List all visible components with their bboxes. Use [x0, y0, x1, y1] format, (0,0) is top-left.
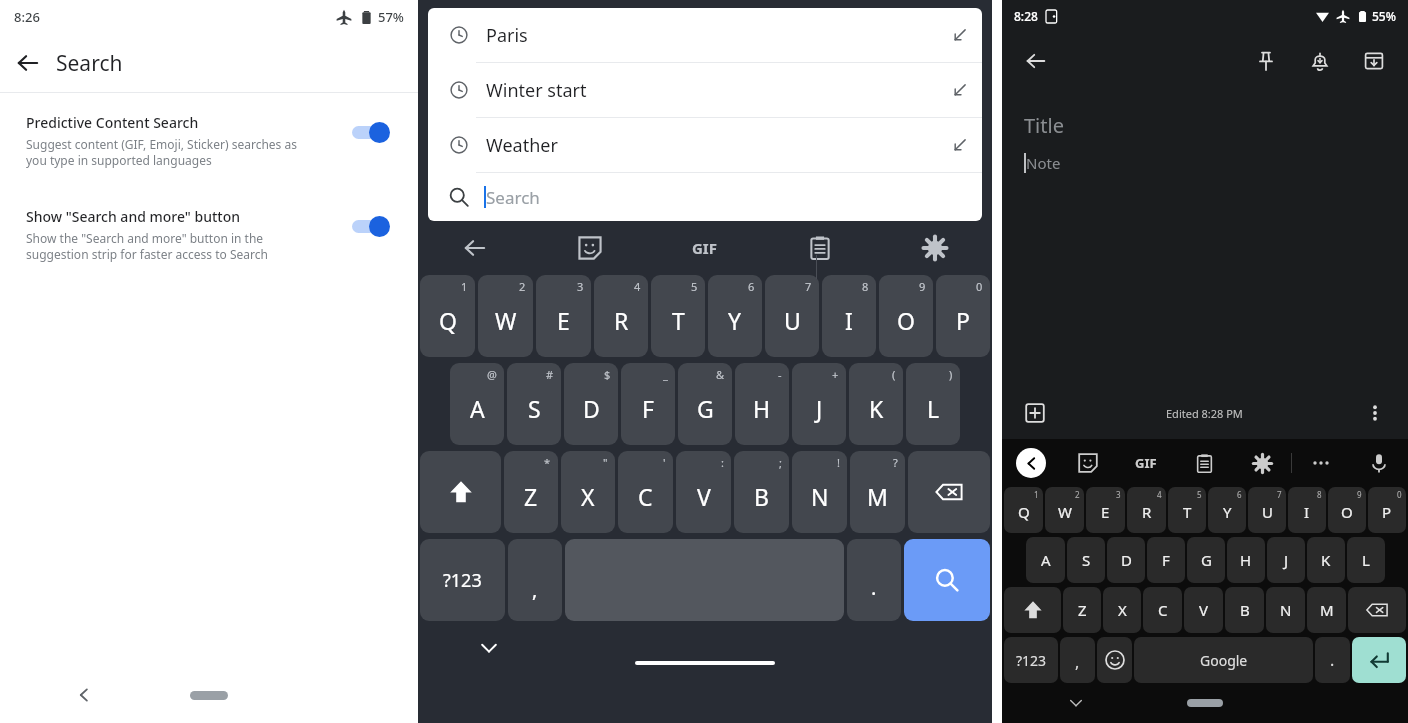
- button[interactable]: 5: [651, 275, 705, 357]
- button[interactable]: Back: [1014, 39, 1058, 83]
- button[interactable]: 5: [1168, 487, 1206, 533]
- button[interactable]: 9: [879, 275, 933, 357]
- button[interactable]: +: [792, 363, 846, 445]
- button[interactable]: G: [1187, 537, 1225, 583]
- button[interactable]: Show "Search and more" button: [0, 205, 418, 265]
- button[interactable]: Paris: [428, 8, 982, 62]
- button[interactable]: Hide keyboard: [1064, 691, 1088, 715]
- button[interactable]: Toggle: [350, 215, 392, 237]
- button[interactable]: S: [1067, 537, 1105, 583]
- button[interactable]: Shift: [420, 451, 501, 533]
- button[interactable]: Shift: [1004, 587, 1061, 633]
- button[interactable]: .: [1315, 637, 1350, 683]
- button[interactable]: Back: [64, 675, 104, 715]
- button[interactable]: M: [1307, 587, 1346, 633]
- button[interactable]: C: [1143, 587, 1182, 633]
- button[interactable]: X: [1103, 587, 1141, 633]
- button[interactable]: ): [906, 363, 960, 445]
- button[interactable]: 1: [420, 275, 475, 357]
- button[interactable]: Predictive Content Search: [0, 111, 418, 171]
- button[interactable]: _: [621, 363, 675, 445]
- button[interactable]: ;: [734, 451, 789, 533]
- button[interactable]: Backspace: [908, 451, 990, 533]
- button[interactable]: Toggle: [350, 121, 392, 143]
- button[interactable]: B: [1225, 587, 1264, 633]
- button[interactable]: 0: [1368, 487, 1406, 533]
- button[interactable]: Back: [418, 221, 532, 275]
- button[interactable]: (: [849, 363, 903, 445]
- button[interactable]: Add: [1018, 396, 1052, 430]
- button[interactable]: 2: [1045, 487, 1084, 533]
- button[interactable]: Stickers: [1059, 439, 1117, 487]
- button[interactable]: 8: [822, 275, 876, 357]
- button[interactable]: Hide keyboard: [474, 633, 504, 663]
- button[interactable]: 7: [1248, 487, 1286, 533]
- button[interactable]: 2: [478, 275, 533, 357]
- button[interactable]: V: [1184, 587, 1223, 633]
- button[interactable]: More: [1292, 439, 1350, 487]
- button[interactable]: Back: [0, 35, 56, 91]
- button[interactable]: L: [1347, 537, 1385, 583]
- button[interactable]: GIF: [647, 221, 762, 275]
- button[interactable]: 1: [1004, 487, 1043, 533]
- button[interactable]: 9: [1328, 487, 1366, 533]
- button[interactable]: N: [1266, 587, 1305, 633]
- button[interactable]: Backspace: [1348, 587, 1406, 633]
- button[interactable]: 7: [765, 275, 819, 357]
- button[interactable]: !: [792, 451, 847, 533]
- button[interactable]: Back: [1016, 448, 1046, 478]
- button[interactable]: Home: [1187, 699, 1223, 707]
- staticText: E: [1101, 502, 1110, 522]
- button[interactable]: ?123: [420, 539, 505, 621]
- button[interactable]: @: [450, 363, 504, 445]
- button[interactable]: J: [1267, 537, 1305, 583]
- button[interactable]: D: [1107, 537, 1145, 583]
- button[interactable]: ,: [508, 539, 562, 621]
- button[interactable]: Emoji: [1097, 637, 1132, 683]
- button[interactable]: Search: [428, 173, 982, 221]
- button[interactable]: ?: [850, 451, 905, 533]
- button[interactable]: .: [847, 539, 901, 621]
- button[interactable]: $: [564, 363, 618, 445]
- button[interactable]: A: [1026, 537, 1065, 583]
- button[interactable]: 3: [536, 275, 591, 357]
- button[interactable]: 0: [936, 275, 990, 357]
- button[interactable]: Enter: [1352, 637, 1406, 683]
- button[interactable]: Google: [1134, 637, 1313, 683]
- button[interactable]: GIF: [1117, 439, 1175, 487]
- button[interactable]: Reminder: [1298, 39, 1342, 83]
- button[interactable]: ': [618, 451, 673, 533]
- button[interactable]: -: [735, 363, 789, 445]
- button[interactable]: #: [507, 363, 561, 445]
- button[interactable]: &: [678, 363, 732, 445]
- button[interactable]: F: [1147, 537, 1185, 583]
- button[interactable]: Search: [904, 539, 990, 621]
- button[interactable]: Settings: [1233, 439, 1291, 487]
- button[interactable]: 4: [1127, 487, 1166, 533]
- button[interactable]: ": [561, 451, 615, 533]
- button[interactable]: Clipboard: [1175, 439, 1233, 487]
- button[interactable]: More options: [1358, 396, 1392, 430]
- button[interactable]: *: [504, 451, 558, 533]
- button[interactable]: Settings: [877, 221, 992, 275]
- button[interactable]: Voice input: [1350, 439, 1408, 487]
- button[interactable]: K: [1307, 537, 1345, 583]
- button[interactable]: Stickers: [532, 221, 647, 275]
- button[interactable]: 4: [594, 275, 648, 357]
- button[interactable]: Pin: [1244, 39, 1288, 83]
- button[interactable]: 6: [708, 275, 762, 357]
- button[interactable]: Z: [1063, 587, 1101, 633]
- button[interactable]: Clipboard: [762, 221, 877, 275]
- button[interactable]: :: [676, 451, 731, 533]
- button[interactable]: Weather: [428, 118, 982, 172]
- button[interactable]: ,: [1060, 637, 1095, 683]
- button[interactable]: H: [1227, 537, 1265, 583]
- button[interactable]: Archive: [1352, 39, 1396, 83]
- button[interactable]: ?123: [1004, 637, 1058, 683]
- button[interactable]: 8: [1288, 487, 1326, 533]
- button[interactable]: Winter start: [428, 63, 982, 117]
- button[interactable]: 3: [1086, 487, 1125, 533]
- button[interactable]: 6: [1208, 487, 1246, 533]
- button[interactable]: Home: [190, 691, 228, 700]
